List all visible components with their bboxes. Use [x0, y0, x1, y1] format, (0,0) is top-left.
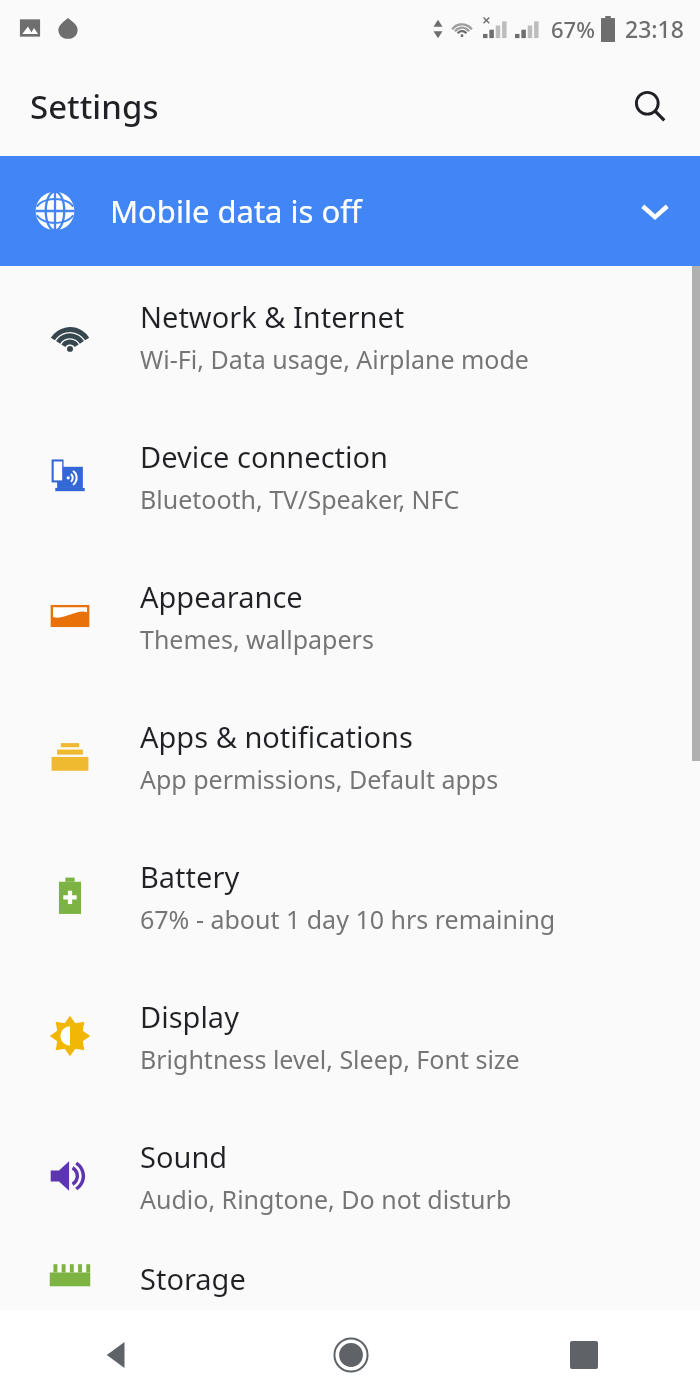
staticText: Network & Internet [140, 297, 405, 336]
staticText: Storage [140, 1259, 246, 1298]
button[interactable]: Apps & notifications [0, 686, 700, 826]
staticText: Audio, Ringtone, Do not disturb [140, 1182, 512, 1216]
staticText: Appearance [140, 577, 303, 616]
staticText: Themes, wallpapers [140, 622, 374, 656]
staticText: Mobile data is off [110, 190, 610, 232]
staticText: Display [140, 997, 239, 1036]
button[interactable]: Network & Internet [0, 266, 700, 406]
staticText: 67% [551, 14, 595, 44]
button[interactable]: Back [0, 1310, 234, 1400]
button[interactable]: Appearance [0, 546, 700, 686]
button[interactable]: Storage [0, 1246, 700, 1310]
staticText: App permissions, Default apps [140, 762, 499, 796]
button[interactable]: Recent apps [467, 1310, 700, 1400]
button[interactable]: Battery [0, 826, 700, 966]
staticText: Apps & notifications [140, 717, 413, 756]
button[interactable]: Home [234, 1310, 467, 1400]
staticText: Battery [140, 857, 240, 896]
staticText: 23:18 [625, 13, 684, 44]
button[interactable]: Search [622, 78, 678, 134]
button[interactable]: Display [0, 966, 700, 1106]
staticText: Settings [30, 84, 159, 129]
button[interactable]: Sound [0, 1106, 700, 1246]
staticText: 67% - about 1 day 10 hrs remaining [140, 902, 556, 936]
button[interactable]: Device connection [0, 406, 700, 546]
staticText: Brightness level, Sleep, Font size [140, 1042, 520, 1076]
staticText: Bluetooth, TV/Speaker, NFC [140, 482, 460, 516]
staticText: Sound [140, 1137, 228, 1176]
staticText: Wi-Fi, Data usage, Airplane mode [140, 342, 529, 376]
staticText: Device connection [140, 437, 388, 476]
button[interactable]: Mobile data is off [0, 156, 700, 266]
